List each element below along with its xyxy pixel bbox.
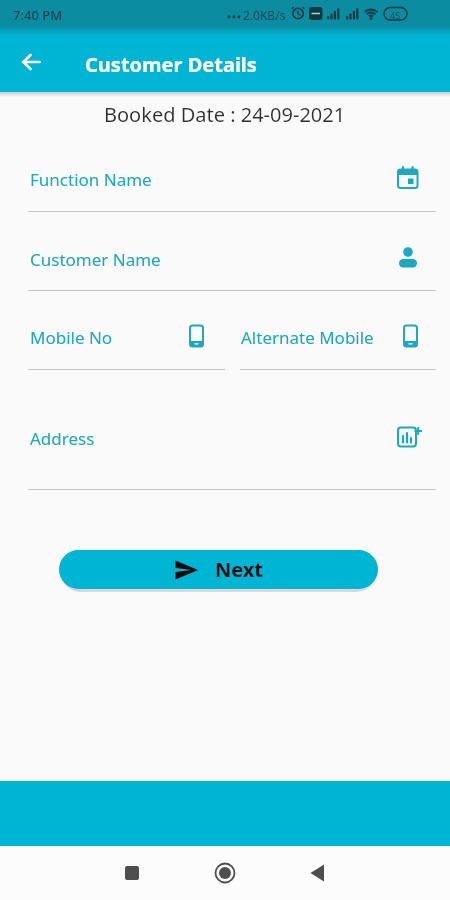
button[interactable] [118, 859, 146, 887]
button[interactable] [211, 859, 239, 887]
staticText: Booked Date : 24-09-2021 [104, 101, 346, 128]
staticText: 2.0KB/s [243, 7, 286, 23]
button[interactable] [28, 418, 436, 491]
staticText: Mobile No [30, 326, 113, 349]
button[interactable] [28, 158, 436, 214]
staticText: Customer Name [30, 248, 161, 271]
staticText: Function Name [30, 168, 152, 191]
staticText: 7:40 PM [13, 6, 63, 24]
staticText: 45 [390, 9, 401, 21]
staticText: Next [215, 556, 264, 583]
button[interactable] [28, 240, 436, 292]
staticText: Address [30, 427, 95, 450]
button[interactable] [28, 318, 225, 371]
button[interactable] [240, 318, 436, 371]
button[interactable] [303, 859, 331, 887]
staticText: Alternate Mobile [241, 326, 374, 349]
button[interactable] [16, 47, 46, 77]
button[interactable]: Next [59, 550, 378, 589]
staticText: Customer Details [85, 51, 257, 78]
